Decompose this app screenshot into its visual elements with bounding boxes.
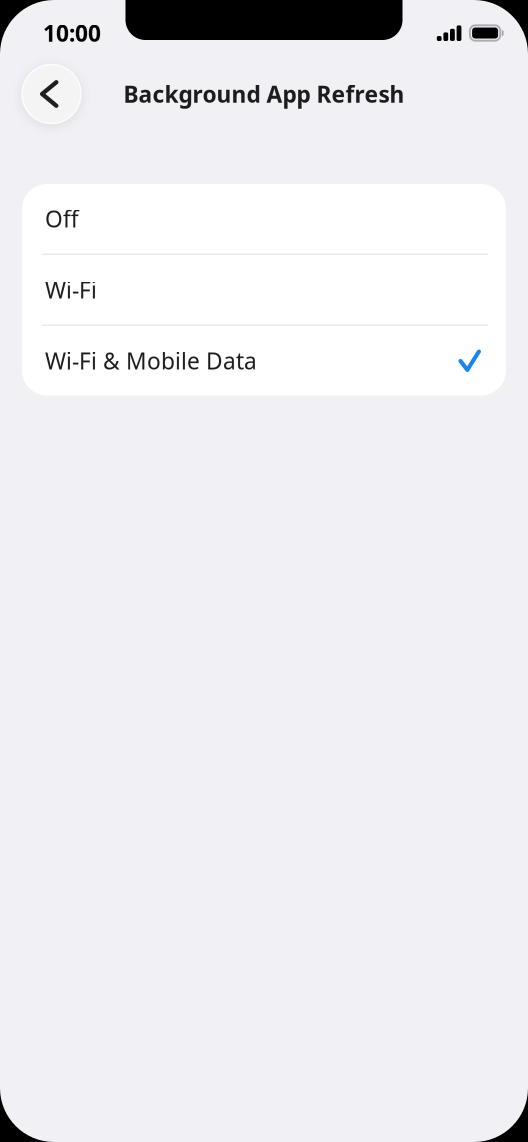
button[interactable]: Wi-Fi & Mobile Data (22, 326, 506, 395)
staticText: Wi-Fi (45, 275, 97, 305)
button[interactable]: Off (22, 184, 506, 253)
button[interactable]: Wi-Fi (22, 255, 506, 324)
staticText: 10:00 (43, 18, 101, 48)
staticText: Background App Refresh (123, 79, 404, 109)
staticText: Off (45, 204, 79, 234)
staticText: Wi-Fi & Mobile Data (45, 346, 257, 376)
button[interactable]: Back (22, 64, 81, 123)
